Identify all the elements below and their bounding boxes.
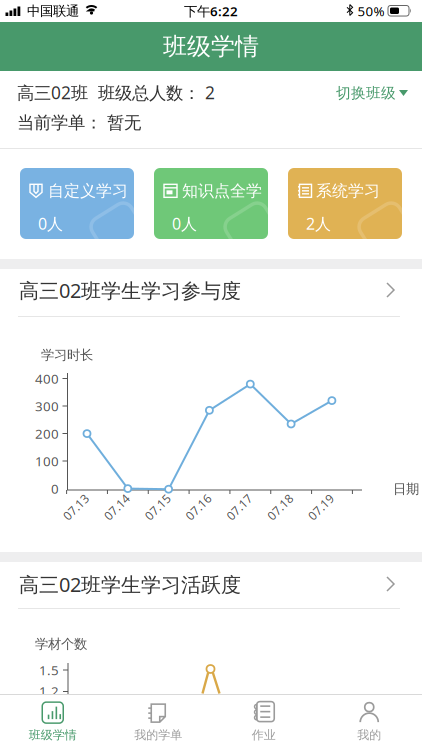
staticText: 学材个数 <box>35 636 87 652</box>
staticText: 1.5 <box>39 661 59 679</box>
staticText: 50% <box>357 2 384 20</box>
staticText: 200 <box>35 425 59 442</box>
staticText: 0人 <box>38 213 63 234</box>
staticText: 当前学单： 暂无 <box>17 112 141 133</box>
button[interactable]: 自定义学习 <box>20 168 134 239</box>
button[interactable]: 知识点全学 <box>154 168 268 239</box>
staticText: 0人 <box>172 213 197 234</box>
button[interactable]: 作业 <box>211 694 316 750</box>
staticText: 高三02班学生学习参与度 <box>19 277 241 304</box>
staticText: 300 <box>35 397 59 415</box>
staticText: 日期 <box>393 481 419 497</box>
button[interactable]: 班级学情 <box>0 694 105 750</box>
staticText: 07.16 <box>183 499 214 515</box>
staticText: 自定义学习 <box>48 181 128 201</box>
button[interactable]: 高三02班学生学习参与度 <box>0 270 422 310</box>
staticText: 中国联通 <box>27 3 79 19</box>
staticText: 学习时长 <box>41 347 93 363</box>
staticText: 系统学习 <box>316 181 380 201</box>
staticText: 0 <box>51 480 59 497</box>
staticText: 07.19 <box>305 499 336 515</box>
button[interactable]: 高三02班学生学习活跃度 <box>0 564 422 604</box>
staticText: 07.14 <box>101 499 132 515</box>
staticText: 07.18 <box>265 499 296 515</box>
staticText: 高三02班 班级总人数： 2 <box>17 81 215 104</box>
staticText: 100 <box>35 452 59 470</box>
button[interactable]: 我的 <box>316 694 422 750</box>
staticText: 我的学单 <box>134 728 182 742</box>
staticText: 知识点全学 <box>182 181 262 201</box>
staticText: 班级学情 <box>163 32 259 61</box>
staticText: 班级学情 <box>29 728 77 742</box>
staticText: 07.15 <box>142 499 173 515</box>
staticText: 下午6:22 <box>184 2 238 20</box>
staticText: 我的 <box>357 728 381 742</box>
button[interactable]: 我的学单 <box>105 694 211 750</box>
button[interactable]: 切换班级 <box>336 82 408 104</box>
staticText: 切换班级 <box>336 84 396 102</box>
staticText: 2人 <box>306 213 331 234</box>
staticText: 高三02班学生学习活跃度 <box>19 571 241 598</box>
staticText: 400 <box>35 370 59 387</box>
staticText: 07.13 <box>60 499 91 515</box>
staticText: 1.2 <box>39 682 59 700</box>
staticText: 作业 <box>252 728 276 742</box>
staticText: 07.17 <box>224 499 255 515</box>
button[interactable]: 系统学习 <box>288 168 402 239</box>
